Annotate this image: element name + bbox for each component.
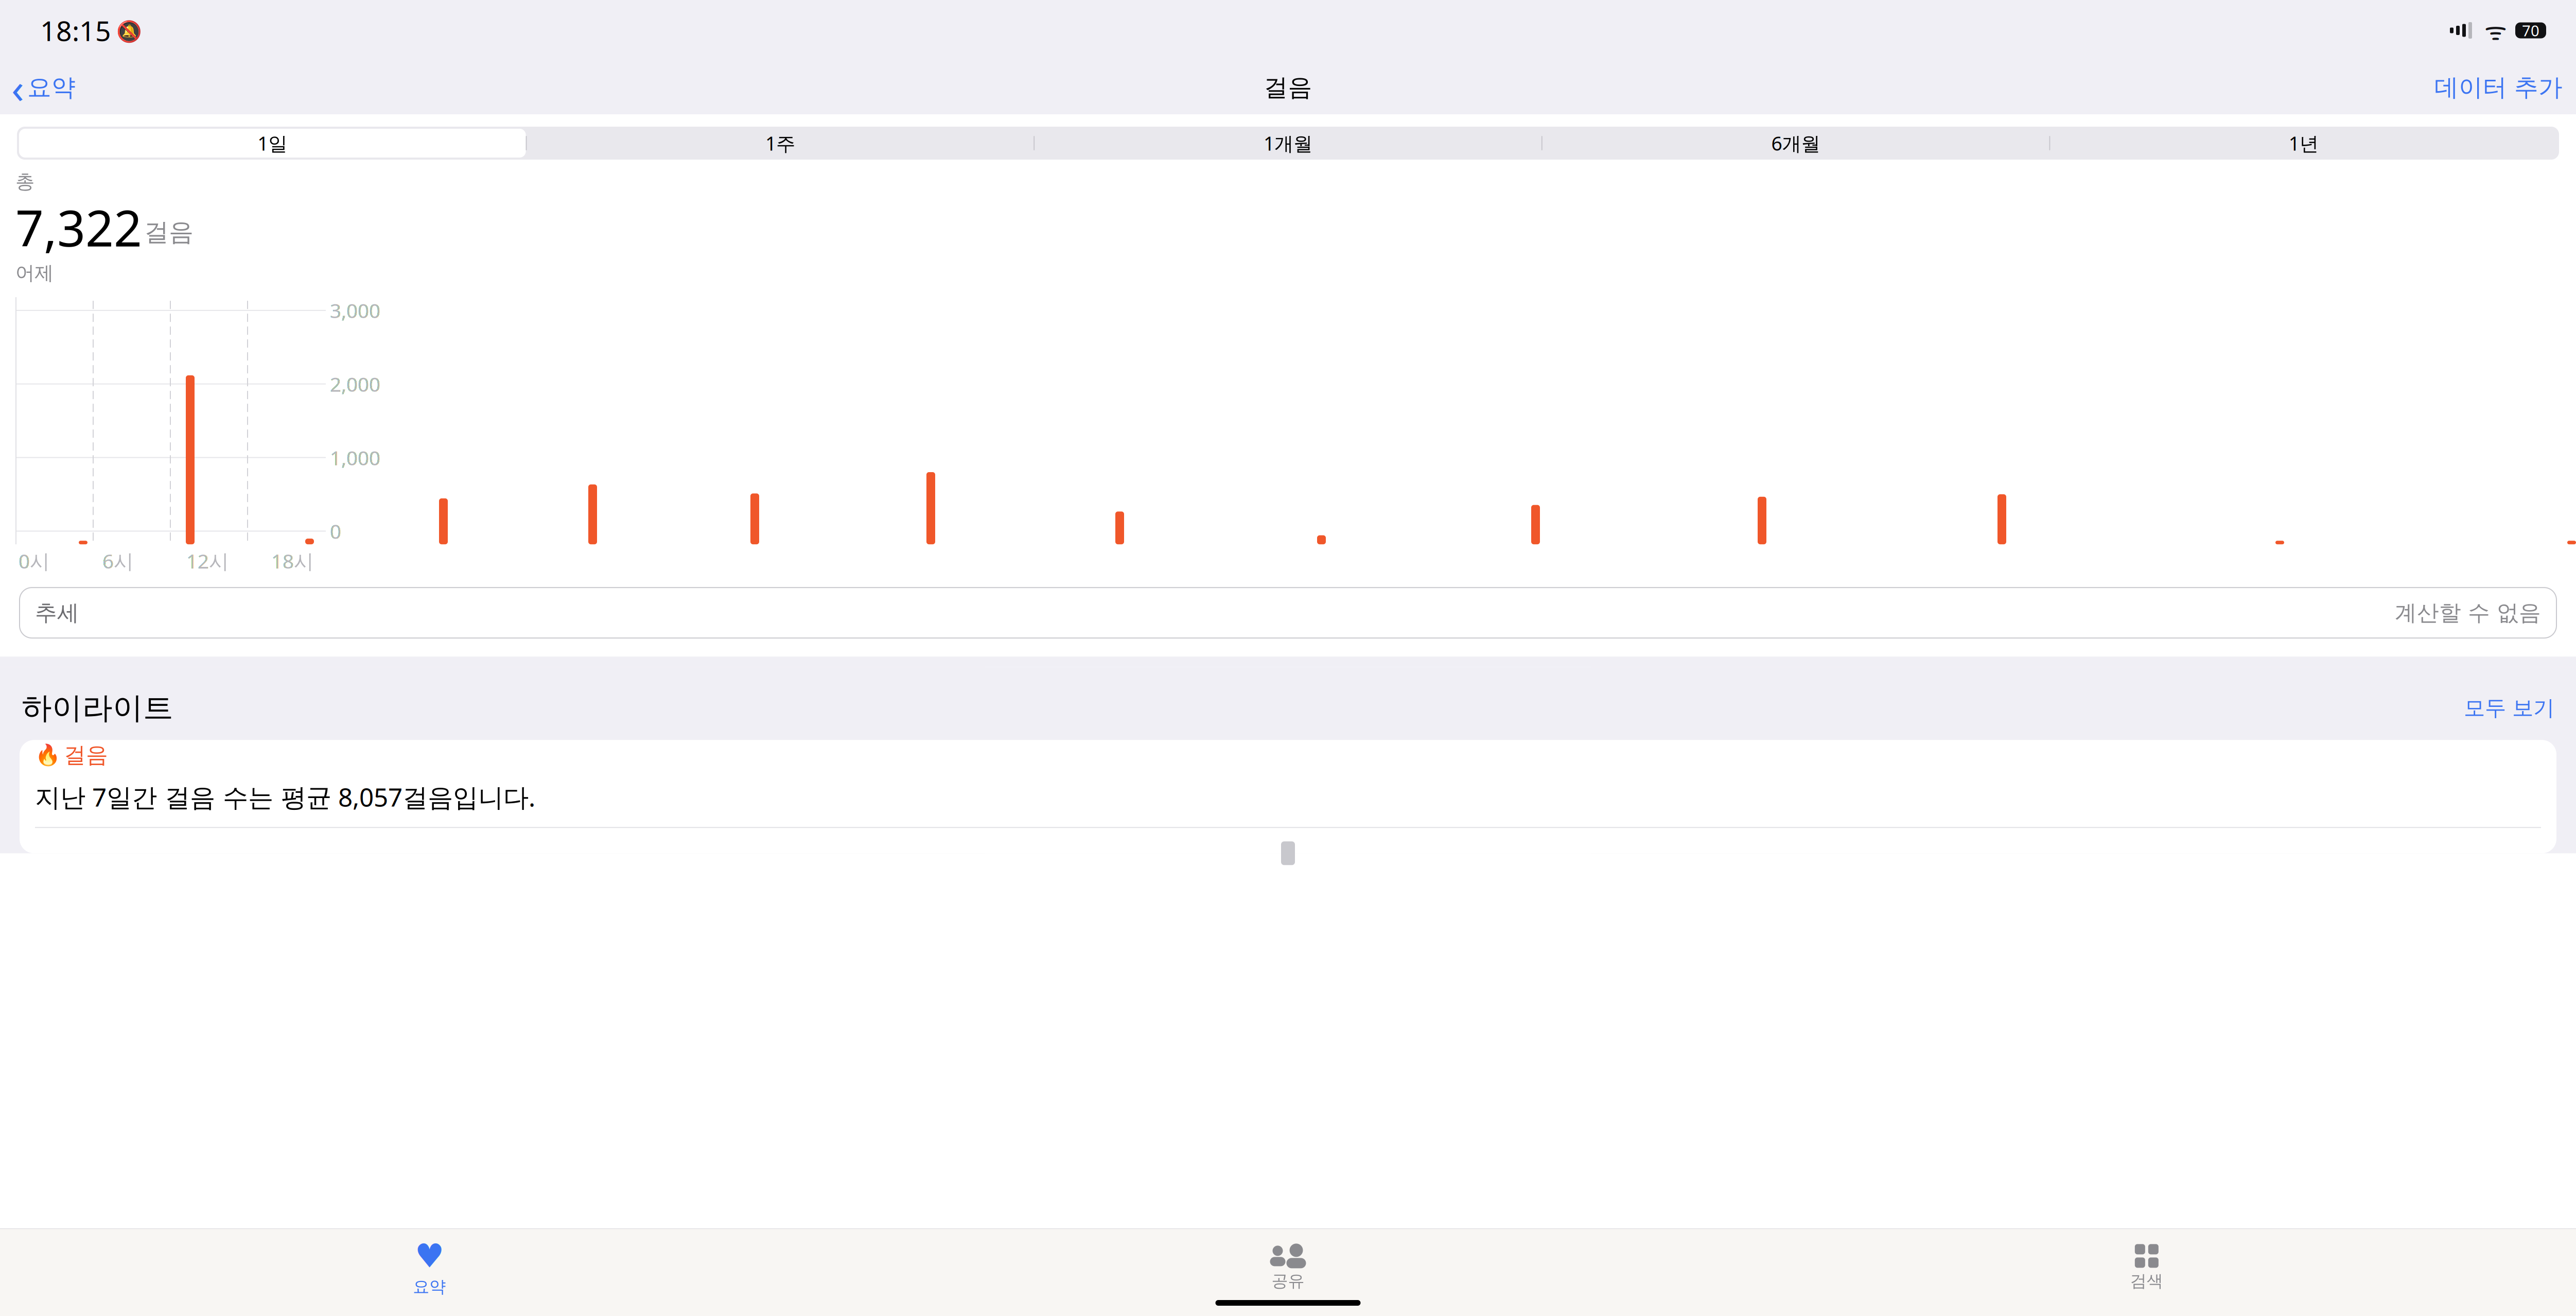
staticText: ᯤ [2472,14,2507,47]
button[interactable]: ♥ [0,1237,859,1297]
staticText: 1,000 [330,444,380,471]
staticText: 추세 [35,599,79,626]
staticText: 12시 [186,548,229,574]
staticText: 요약 [413,1277,446,1297]
staticText: 지난 7일간 걸음 수는 평균 8,057걸음입니다. [35,780,535,814]
staticText: 1년 [2289,130,2319,156]
staticText: 6시 [102,548,134,574]
button[interactable]: ‹ [0,56,76,119]
button[interactable]: 공유 [859,1243,1717,1291]
staticText: 걸음 [1264,73,1312,102]
staticText: 모두 보기 [2464,695,2554,721]
staticText: 🔕 [111,17,142,44]
staticText: 공유 [1272,1271,1304,1291]
staticText: ♥ [415,1237,444,1275]
staticText: 계산할 수 없음 [2395,599,2541,626]
staticText: 18:15 [40,12,111,49]
button[interactable]: 1개월 [1035,129,1541,158]
staticText: 걸음 [64,742,108,769]
button[interactable]: 검색 [1717,1243,2576,1291]
button[interactable]: 1년 [2050,129,2557,158]
staticText: 3,000 [330,297,380,324]
staticText: 1주 [765,130,795,156]
staticText: 0시 [19,548,50,574]
button[interactable]: 6개월 [1542,129,2049,158]
button[interactable]: 1일 [19,129,526,158]
button[interactable]: 모두 보기 [2464,695,2554,721]
staticText: 요약 [27,73,76,102]
staticText: 1개월 [1264,130,1312,156]
staticText: 🔥 [35,743,61,767]
staticText: 검색 [2130,1271,2163,1291]
staticText: ‹ [11,60,24,115]
staticText: 2,000 [330,371,380,397]
staticText: 하이라이트 [22,690,173,727]
button[interactable]: 1주 [527,129,1034,158]
button[interactable]: 추세 [20,588,2556,638]
button[interactable]: 🔥 [20,740,2556,853]
staticText: 걸음 [144,217,194,247]
staticText: 70 [2522,20,2539,40]
staticText: 데이터 추가 [2434,73,2563,102]
button[interactable]: 데이터 추가 [2434,69,2576,106]
staticText: 0 [330,518,341,544]
staticText: 6개월 [1771,130,1820,156]
staticText: 어제 [15,261,54,285]
staticText: 1일 [257,130,287,156]
staticText: 총 [15,170,34,194]
staticText: 18시 [271,548,314,574]
